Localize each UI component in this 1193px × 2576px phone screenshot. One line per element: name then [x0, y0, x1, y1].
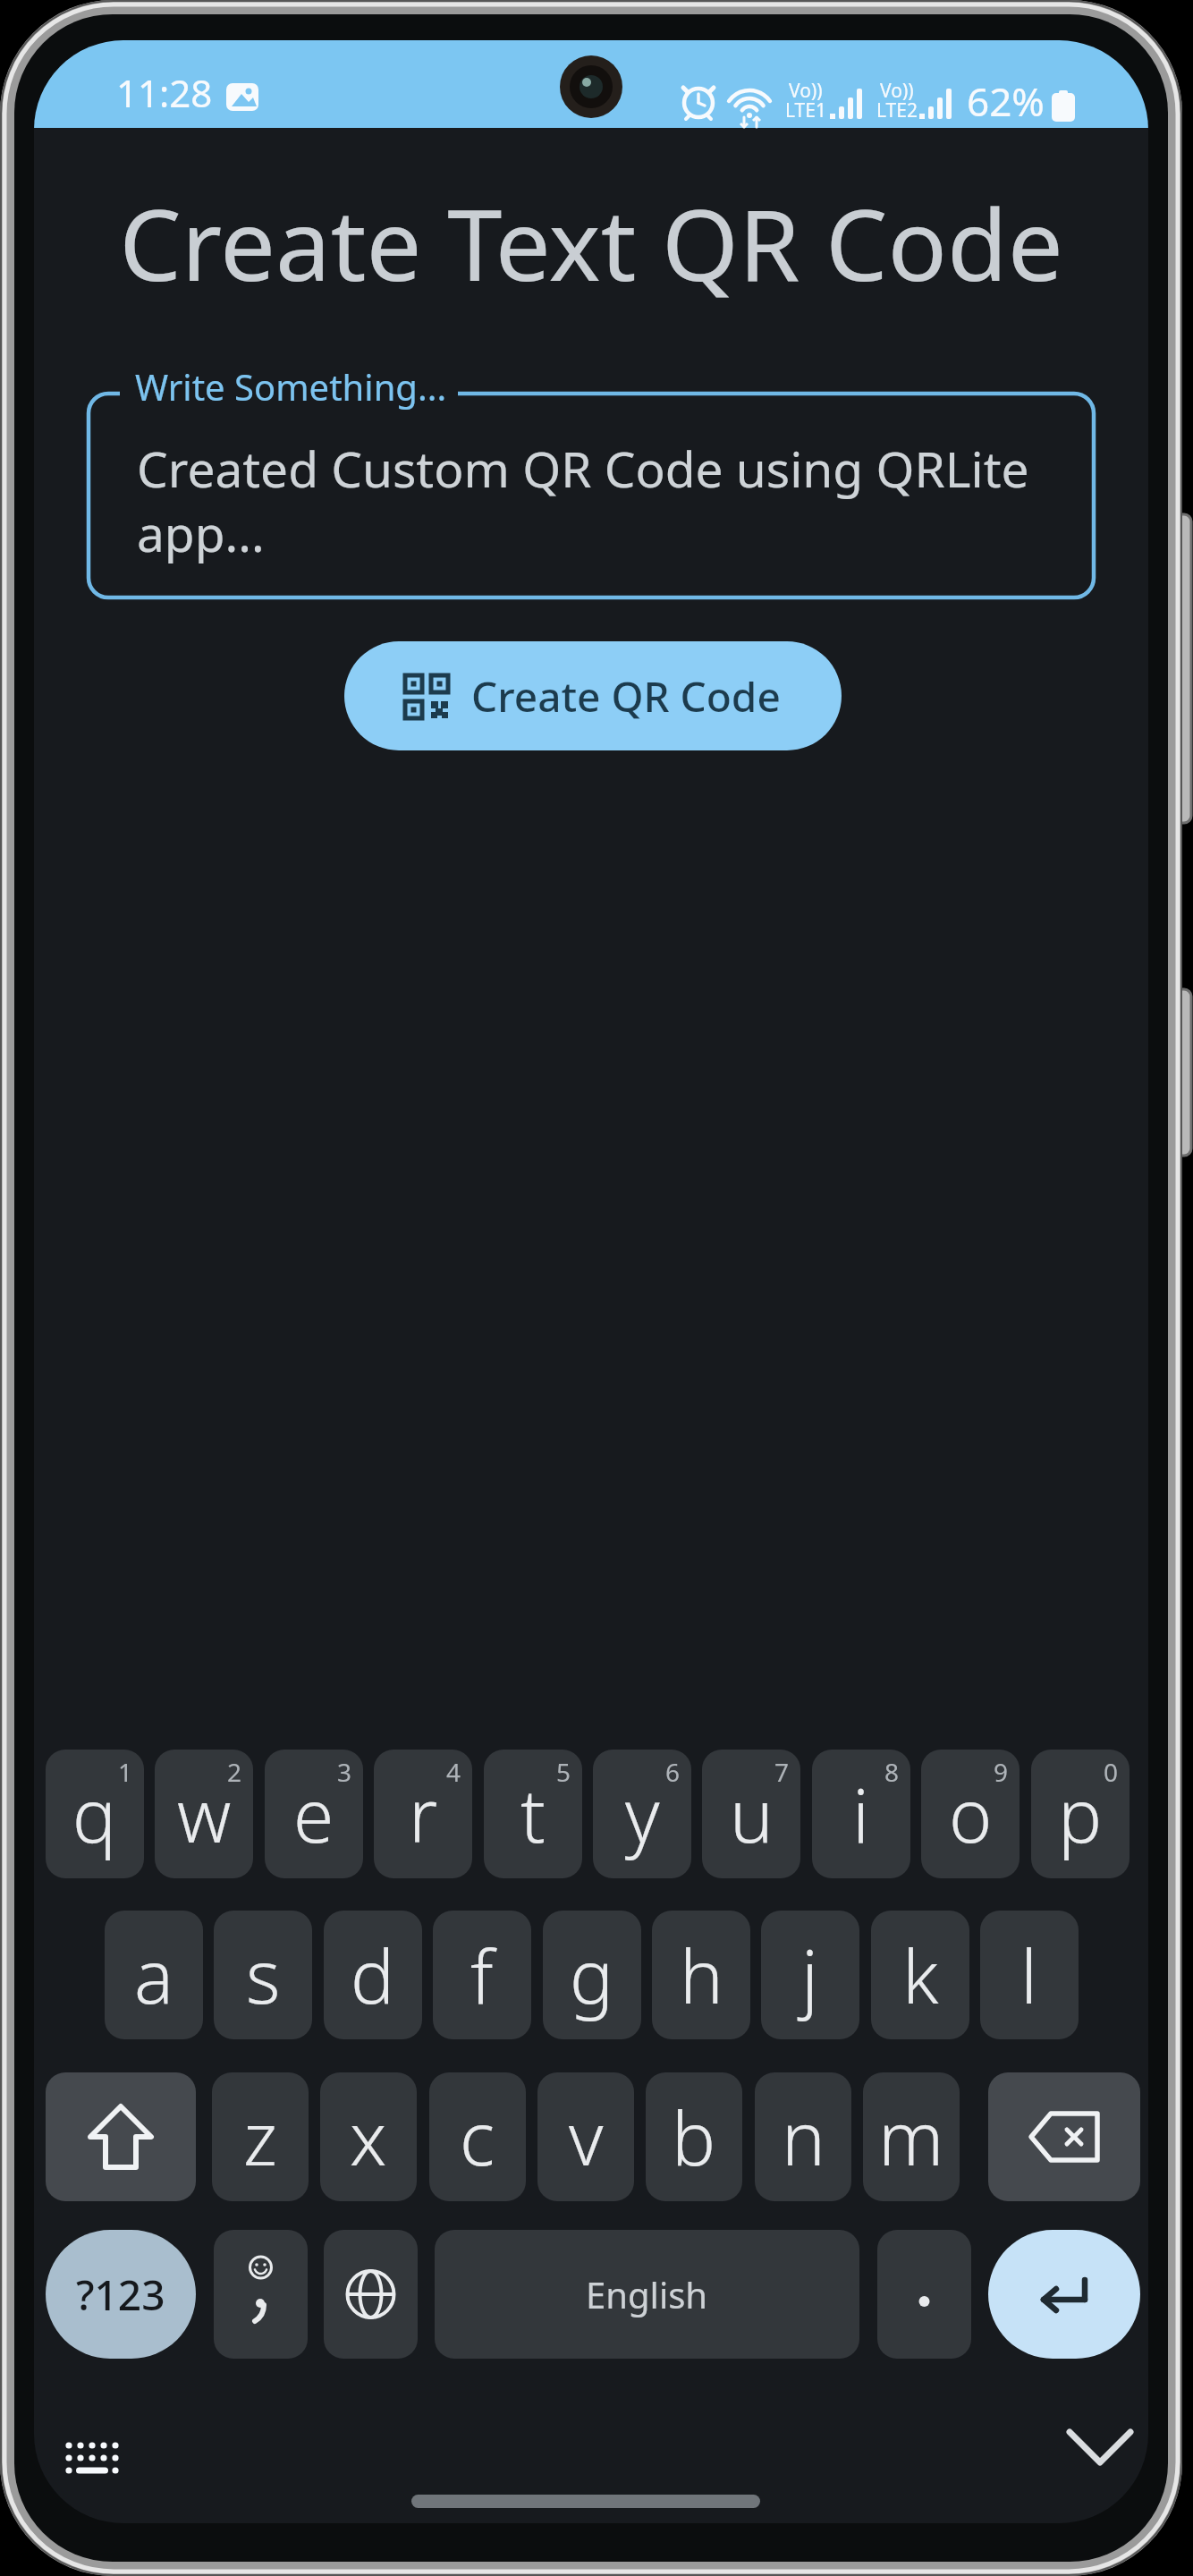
- staticText: g: [570, 1925, 614, 2025]
- staticText: Create Text QR Code: [34, 175, 1148, 309]
- button[interactable]: [324, 2230, 418, 2359]
- button[interactable]: k: [871, 1911, 969, 2039]
- button[interactable]: [46, 2072, 196, 2201]
- staticText: 5: [556, 1755, 571, 1789]
- button[interactable]: w: [155, 1750, 253, 1878]
- staticText: w: [177, 1764, 232, 1864]
- staticText: Created Custom QR Code using QRLite app.…: [137, 435, 1029, 566]
- staticText: q: [72, 1764, 117, 1864]
- button[interactable]: e: [265, 1750, 363, 1878]
- staticText: z: [243, 2087, 277, 2187]
- button[interactable]: j: [761, 1911, 859, 2039]
- button[interactable]: [214, 2230, 308, 2359]
- button[interactable]: s: [214, 1911, 312, 2039]
- button[interactable]: [988, 2072, 1140, 2201]
- staticText: m: [878, 2087, 944, 2187]
- staticText: s: [246, 1925, 281, 2025]
- staticText: Write Something...: [135, 362, 447, 411]
- button[interactable]: o: [921, 1750, 1020, 1878]
- staticText: e: [293, 1764, 334, 1864]
- button[interactable]: ?123: [46, 2230, 196, 2359]
- button[interactable]: d: [324, 1911, 422, 2039]
- button[interactable]: b: [646, 2072, 742, 2201]
- staticText: ?123: [76, 2267, 165, 2323]
- staticText: 11:28: [116, 67, 213, 118]
- staticText: a: [134, 1925, 173, 2025]
- button[interactable]: i: [812, 1750, 910, 1878]
- button[interactable]: English: [435, 2230, 859, 2359]
- button[interactable]: p: [1031, 1750, 1130, 1878]
- staticText: Vo)): [789, 78, 823, 104]
- button[interactable]: n: [755, 2072, 851, 2201]
- staticText: 3: [337, 1755, 352, 1789]
- button[interactable]: u: [702, 1750, 800, 1878]
- staticText: 2: [227, 1755, 242, 1789]
- staticText: LTE1: [785, 97, 826, 123]
- staticText: h: [680, 1925, 723, 2025]
- button[interactable]: r: [374, 1750, 472, 1878]
- staticText: n: [782, 2087, 825, 2187]
- staticText: v: [569, 2087, 604, 2187]
- button[interactable]: m: [863, 2072, 960, 2201]
- staticText: o: [949, 1764, 993, 1864]
- staticText: LTE2: [876, 97, 918, 123]
- button[interactable]: l: [980, 1911, 1079, 2039]
- staticText: t: [520, 1764, 546, 1864]
- button[interactable]: [988, 2230, 1140, 2359]
- staticText: 6: [665, 1755, 681, 1789]
- staticText: k: [902, 1925, 939, 2025]
- staticText: i: [852, 1764, 870, 1864]
- staticText: j: [801, 1925, 819, 2025]
- button[interactable]: q: [46, 1750, 144, 1878]
- button[interactable]: v: [537, 2072, 634, 2201]
- staticText: b: [672, 2087, 716, 2187]
- staticText: Create QR Code: [471, 668, 781, 724]
- staticText: 7: [774, 1755, 790, 1789]
- staticText: c: [460, 2087, 495, 2187]
- staticText: p: [1058, 1764, 1103, 1864]
- staticText: 4: [446, 1755, 461, 1789]
- staticText: 9: [994, 1755, 1009, 1789]
- staticText: 1: [118, 1755, 133, 1789]
- button[interactable]: Create QR Code: [344, 641, 842, 750]
- button[interactable]: g: [543, 1911, 641, 2039]
- button[interactable]: f: [433, 1911, 531, 2039]
- staticText: x: [350, 2087, 387, 2187]
- staticText: l: [1020, 1925, 1038, 2025]
- staticText: 8: [884, 1755, 900, 1789]
- staticText: y: [625, 1764, 660, 1864]
- button[interactable]: a: [105, 1911, 203, 2039]
- staticText: f: [470, 1925, 494, 2025]
- button[interactable]: c: [429, 2072, 526, 2201]
- button[interactable]: x: [320, 2072, 417, 2201]
- button[interactable]: y: [593, 1750, 691, 1878]
- staticText: Vo)): [880, 78, 914, 104]
- button[interactable]: [877, 2230, 971, 2359]
- staticText: u: [730, 1764, 774, 1864]
- staticText: English: [586, 2270, 708, 2318]
- staticText: 62%: [967, 74, 1045, 128]
- staticText: r: [409, 1764, 438, 1864]
- button[interactable]: z: [212, 2072, 309, 2201]
- button[interactable]: t: [484, 1750, 582, 1878]
- staticText: 0: [1104, 1755, 1119, 1789]
- button[interactable]: h: [652, 1911, 750, 2039]
- staticText: d: [351, 1925, 395, 2025]
